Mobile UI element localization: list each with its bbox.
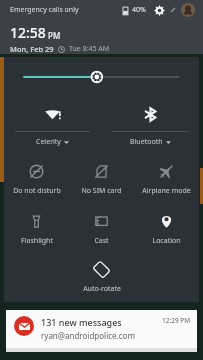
button[interactable]: Flashlight xyxy=(4,204,69,252)
button[interactable]: Bluetooth xyxy=(101,97,199,154)
staticText: Mon, Feb 29 xyxy=(10,44,54,54)
staticText: Emergency calls only xyxy=(10,5,79,15)
staticText: No SIM card xyxy=(81,186,122,196)
button[interactable]: Do not disturb xyxy=(4,154,69,204)
button[interactable]: User profile xyxy=(181,3,195,17)
staticText: Location xyxy=(152,236,181,246)
button[interactable]: Cast xyxy=(69,204,134,252)
staticText: 12:58 xyxy=(10,23,46,42)
button[interactable]: 131 new messages xyxy=(6,310,197,352)
staticText: Cast xyxy=(94,236,109,246)
staticText: Airplane mode xyxy=(142,186,191,196)
button[interactable]: Brightness xyxy=(4,57,199,97)
button[interactable]: Settings xyxy=(153,4,166,17)
staticText: Do not disturb xyxy=(13,186,61,196)
button[interactable]: Auto-rotate xyxy=(69,252,134,298)
staticText: Auto-rotate xyxy=(83,284,121,294)
staticText: 12:29 PM xyxy=(162,316,191,325)
staticText: ryan@androidpolice.com xyxy=(41,330,135,341)
button[interactable]: No SIM card xyxy=(69,154,134,204)
staticText: Tue 8:45 AM xyxy=(69,44,110,54)
staticText: 131 new messages xyxy=(41,316,122,328)
staticText: Flashlight xyxy=(21,236,53,246)
staticText: PM xyxy=(48,30,61,41)
button[interactable]: Celerity xyxy=(4,97,101,154)
button[interactable]: Location xyxy=(134,204,199,252)
staticText: 40% xyxy=(132,5,146,15)
button[interactable]: Airplane mode xyxy=(134,154,199,204)
staticText: Bluetooth xyxy=(130,137,163,147)
staticText: Celerity xyxy=(36,137,61,147)
